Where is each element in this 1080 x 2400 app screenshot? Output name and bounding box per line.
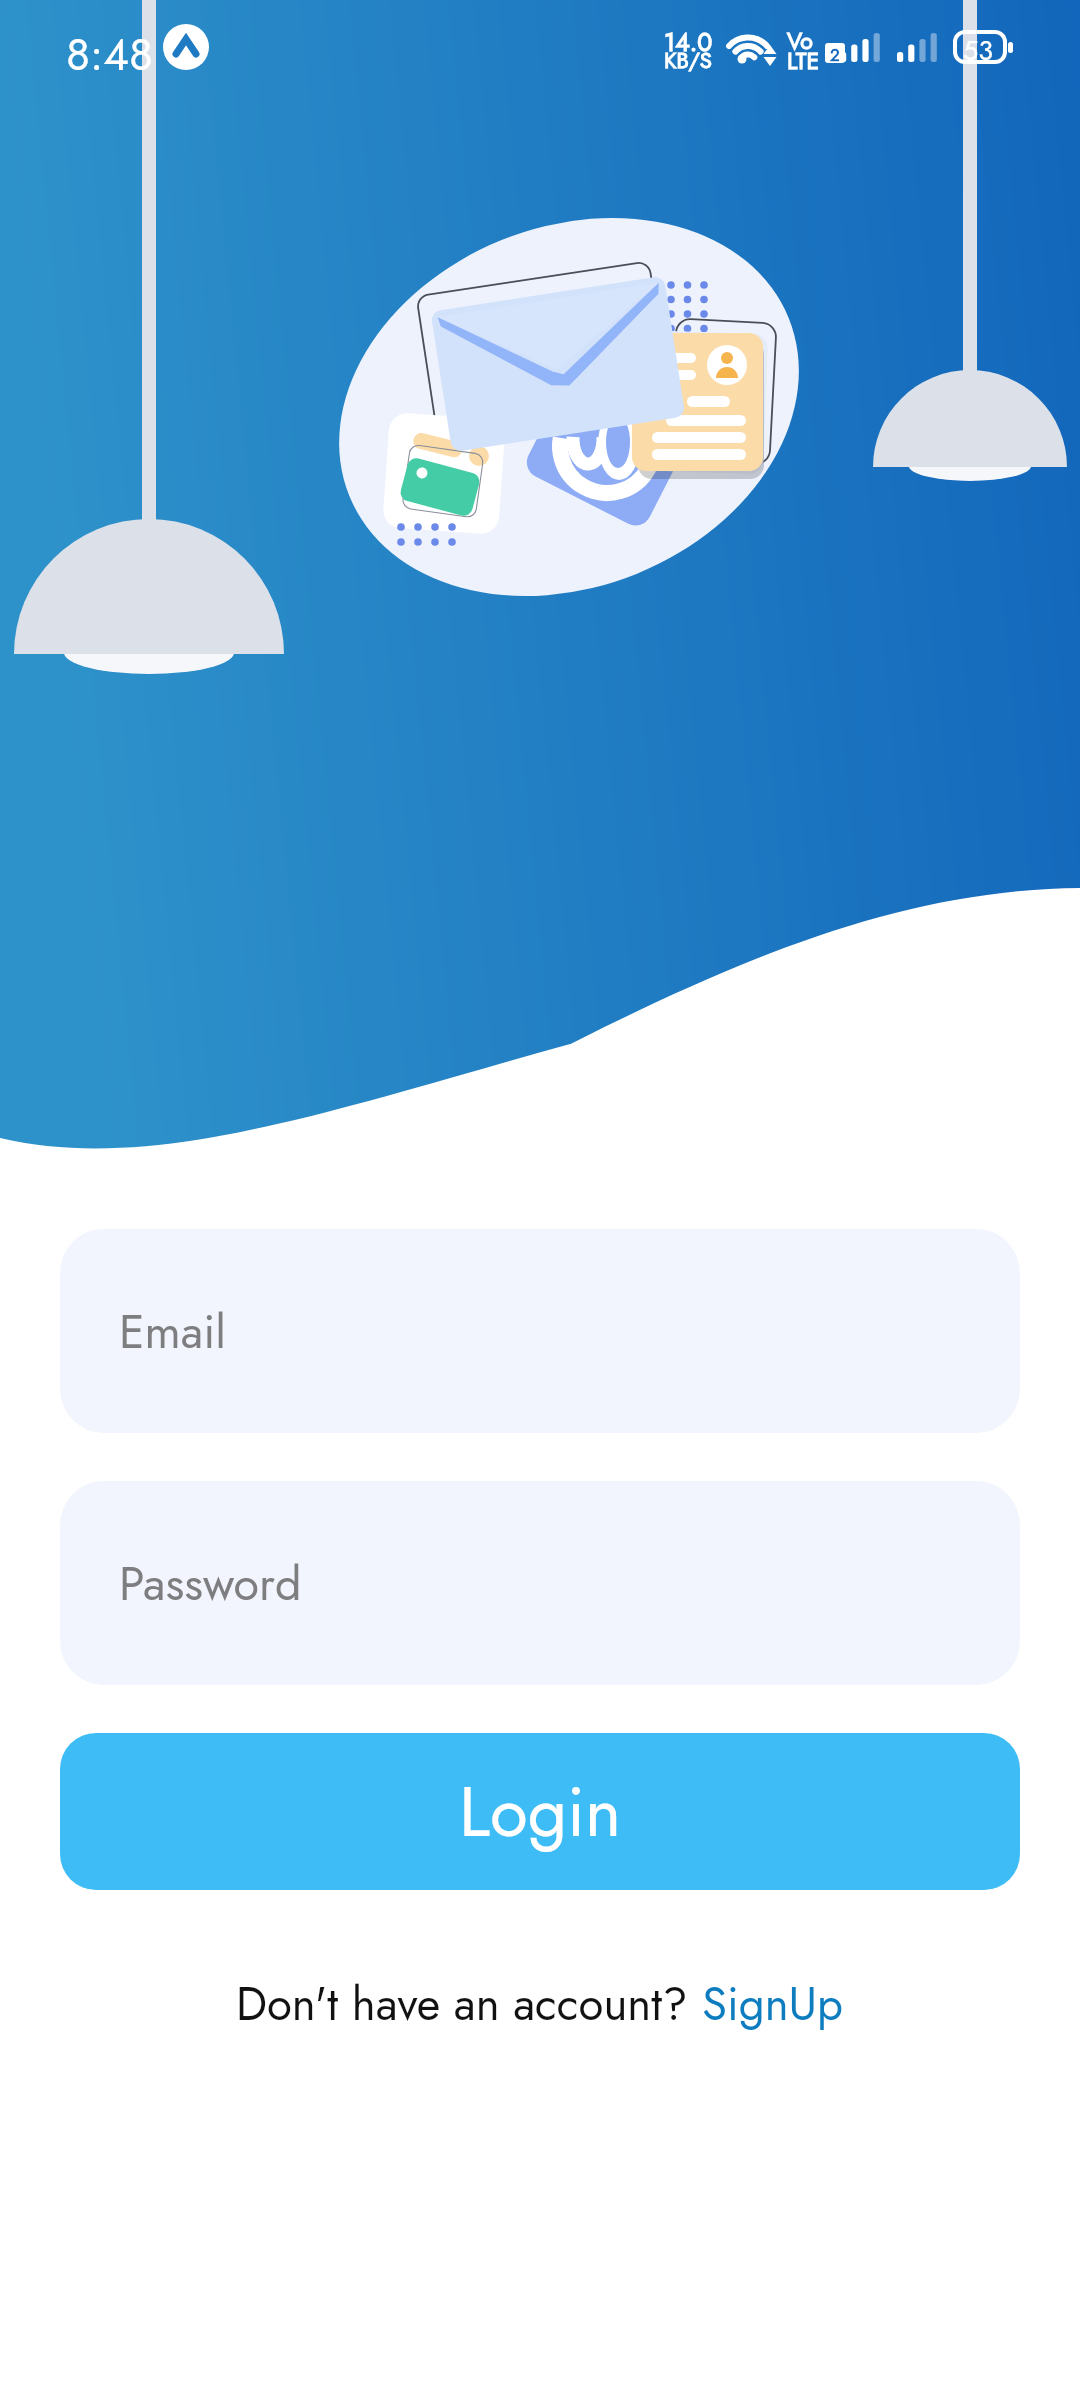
button[interactable]: SignUp — [702, 1971, 844, 2037]
staticText: Vo — [787, 24, 813, 57]
button[interactable]: Login — [60, 1733, 1020, 1890]
button[interactable]: Email — [60, 1229, 1020, 1433]
staticText: KB/S — [664, 44, 712, 76]
staticText: SignUp — [702, 1971, 844, 2037]
staticText: 14.0 — [664, 24, 713, 60]
staticText: Email — [119, 1298, 226, 1365]
staticText: Don't have an account? — [236, 1971, 702, 2037]
staticText: 53 — [963, 31, 993, 70]
staticText: Login — [459, 1762, 622, 1862]
button[interactable]: Password — [60, 1481, 1020, 1685]
staticText: Password — [119, 1550, 302, 1617]
staticText: 2 — [830, 43, 840, 63]
staticText: LTE — [787, 44, 820, 77]
staticText: 8:48 — [66, 23, 153, 87]
